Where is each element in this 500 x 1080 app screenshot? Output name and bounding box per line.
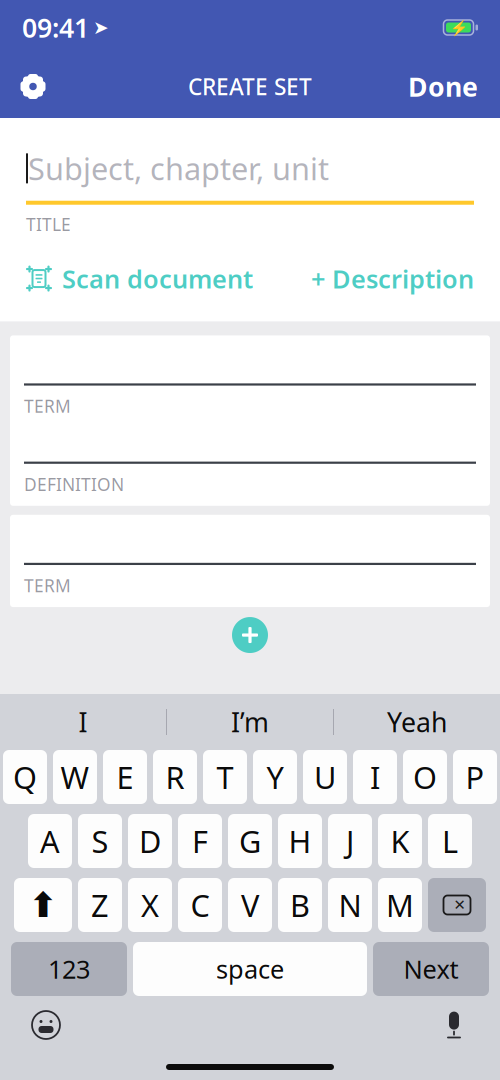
button[interactable]: S <box>78 814 122 868</box>
staticText: Q <box>13 757 37 797</box>
staticText: I <box>78 704 87 740</box>
button[interactable]: E <box>103 750 147 804</box>
button[interactable]: P <box>453 750 497 804</box>
staticText: 123 <box>48 952 90 986</box>
button[interactable]: Emoji keyboard <box>16 999 76 1051</box>
staticText: J <box>346 821 354 861</box>
staticText: space <box>216 952 284 986</box>
staticText: Done <box>408 69 478 104</box>
staticText: TERM <box>24 574 71 597</box>
staticText: Subject, chapter, unit <box>28 148 329 189</box>
staticText: B <box>290 885 310 925</box>
staticText: W <box>60 757 89 797</box>
staticText: N <box>338 885 361 925</box>
button[interactable]: H <box>278 814 322 868</box>
button[interactable]: Q <box>3 750 47 804</box>
staticText: TITLE <box>26 213 71 236</box>
staticText: A <box>40 821 60 861</box>
button[interactable]: R <box>153 750 197 804</box>
button[interactable]: D <box>128 814 172 868</box>
staticText: O <box>413 757 437 797</box>
button[interactable]: I <box>353 750 397 804</box>
button[interactable]: Delete <box>428 878 486 932</box>
staticText: Next <box>403 952 458 986</box>
staticText: T <box>216 757 233 797</box>
staticText: M <box>386 885 414 925</box>
staticText: ➤ <box>93 17 109 38</box>
button[interactable]: G <box>228 814 272 868</box>
button[interactable]: Yeah <box>334 694 500 750</box>
staticText: V <box>241 885 259 925</box>
staticText: ⚡ <box>449 19 467 36</box>
staticText: Yeah <box>387 704 447 740</box>
staticText: ✕ <box>453 897 465 913</box>
button[interactable]: W <box>53 750 97 804</box>
staticText: 09:41 <box>22 10 89 45</box>
button[interactable]: Z <box>78 878 122 932</box>
staticText: Scan document <box>62 262 253 295</box>
button[interactable]: L <box>428 814 472 868</box>
button[interactable]: F <box>178 814 222 868</box>
staticText: ⬆ <box>28 885 57 925</box>
staticText: G <box>239 821 261 861</box>
button[interactable]: O <box>403 750 447 804</box>
button[interactable]: Scan document <box>26 258 253 299</box>
button[interactable]: M <box>378 878 422 932</box>
button[interactable]: + Description <box>311 258 474 299</box>
staticText: P <box>465 757 484 797</box>
staticText: Z <box>91 885 109 925</box>
button[interactable]: space <box>133 942 367 996</box>
staticText: S <box>91 821 108 861</box>
staticText: E <box>116 757 133 797</box>
button[interactable]: K <box>378 814 422 868</box>
staticText: Y <box>266 757 283 797</box>
staticText: CREATE SET <box>188 71 312 101</box>
staticText: H <box>288 821 311 861</box>
staticText: I <box>370 757 380 797</box>
button[interactable]: C <box>178 878 222 932</box>
button[interactable]: B <box>278 878 322 932</box>
staticText: X <box>141 885 159 925</box>
button[interactable]: A <box>28 814 72 868</box>
staticText: F <box>192 821 208 861</box>
button[interactable]: Done <box>392 61 494 111</box>
staticText: DEFINITION <box>24 473 124 496</box>
button[interactable]: I <box>0 694 166 750</box>
button[interactable]: Shift <box>14 878 72 932</box>
staticText: R <box>165 757 184 797</box>
staticText: K <box>390 821 409 861</box>
button[interactable]: V <box>228 878 272 932</box>
button[interactable]: 123 <box>11 942 127 996</box>
button[interactable]: T <box>203 750 247 804</box>
button[interactable]: Next <box>373 942 489 996</box>
staticText: I’m <box>231 704 269 740</box>
button[interactable]: Settings <box>6 61 60 111</box>
button[interactable]: Dictation <box>424 999 484 1051</box>
staticText: L <box>442 821 458 861</box>
staticText: TERM <box>24 395 71 418</box>
button[interactable]: J <box>328 814 372 868</box>
staticText: D <box>139 821 161 861</box>
button[interactable]: Add card <box>222 607 278 663</box>
button[interactable]: X <box>128 878 172 932</box>
button[interactable]: Y <box>253 750 297 804</box>
button[interactable]: I’m <box>167 694 333 750</box>
button[interactable]: N <box>328 878 372 932</box>
button[interactable]: U <box>303 750 347 804</box>
staticText: C <box>190 885 209 925</box>
staticText: U <box>314 757 336 797</box>
staticText: + Description <box>311 262 474 295</box>
